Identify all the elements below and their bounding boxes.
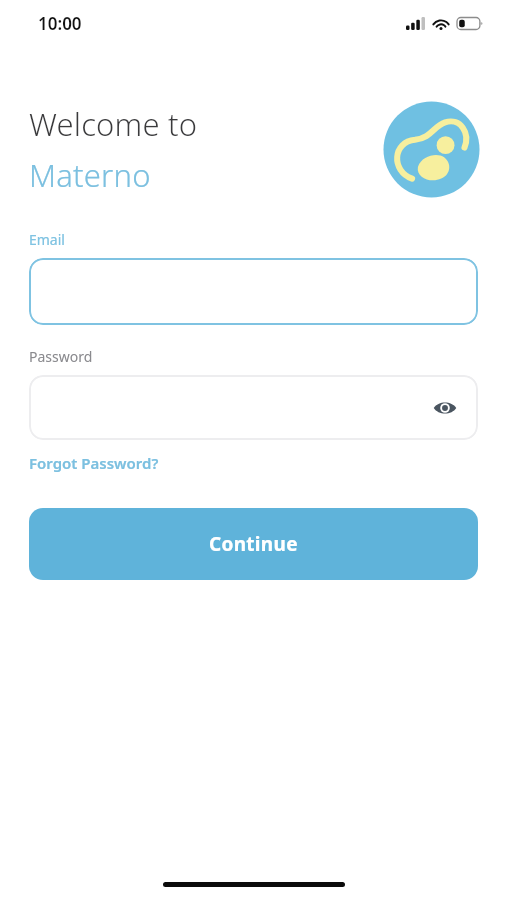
- staticText: Forgot Password?: [29, 453, 159, 473]
- button[interactable]: Forgot Password?: [29, 453, 159, 473]
- button[interactable]: Continue: [29, 508, 478, 580]
- staticText: Continue: [209, 531, 298, 557]
- staticText: Password: [29, 347, 93, 366]
- button[interactable]: Show password: [428, 391, 462, 425]
- staticText: Email: [29, 230, 65, 249]
- staticText: Materno: [29, 154, 151, 196]
- button[interactable]: [29, 258, 478, 325]
- staticText: Welcome to: [29, 103, 198, 145]
- staticText: 10:00: [38, 12, 82, 35]
- button[interactable]: Show password: [29, 375, 478, 440]
